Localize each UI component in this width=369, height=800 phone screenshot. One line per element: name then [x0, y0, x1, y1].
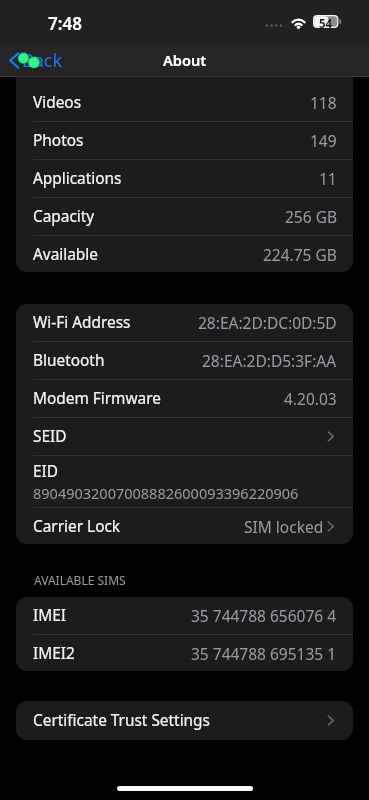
- staticText: 54: [319, 16, 333, 32]
- staticText: 256 GB: [285, 206, 337, 227]
- staticText: 35 744788 656076 4: [191, 605, 337, 626]
- staticText: Applications: [33, 168, 122, 189]
- button[interactable]: Available: [16, 236, 353, 272]
- button[interactable]: EID: [16, 456, 353, 508]
- staticText: Carrier Lock: [33, 516, 121, 537]
- staticText: Capacity: [33, 206, 95, 227]
- staticText: About: [163, 50, 207, 70]
- button[interactable]: Photos: [16, 122, 353, 160]
- button[interactable]: Applications: [16, 160, 353, 198]
- staticText: IMEI2: [33, 643, 75, 664]
- button[interactable]: Bluetooth: [16, 342, 353, 380]
- staticText: 224.75 GB: [263, 244, 337, 265]
- staticText: AVAILABLE SIMS: [34, 572, 126, 588]
- staticText: 7:48: [48, 12, 82, 35]
- staticText: Wi-Fi Address: [33, 312, 131, 333]
- staticText: Available: [33, 244, 98, 265]
- button[interactable]: Back: [9, 48, 63, 73]
- button[interactable]: Wi-Fi Address: [16, 304, 353, 342]
- staticText: Back: [22, 48, 63, 73]
- staticText: Videos: [33, 92, 82, 113]
- staticText: SEID: [33, 426, 67, 447]
- staticText: Photos: [33, 130, 84, 151]
- button[interactable]: IMEI2: [16, 635, 353, 671]
- button[interactable]: Capacity: [16, 198, 353, 236]
- staticText: 28:EA:2D:D5:3F:AA: [202, 350, 337, 371]
- staticText: 4.20.03: [284, 388, 337, 409]
- staticText: 11: [319, 168, 337, 189]
- staticText: 35 744788 695135 1: [191, 643, 337, 664]
- button[interactable]: IMEI: [16, 597, 353, 635]
- staticText: EID: [33, 461, 59, 482]
- staticText: Modem Firmware: [33, 388, 161, 409]
- staticText: 89049032007008882600093396220906: [33, 483, 299, 503]
- staticText: Bluetooth: [33, 350, 105, 371]
- button[interactable]: SEID: [16, 418, 353, 456]
- button[interactable]: Videos: [16, 77, 353, 122]
- button[interactable]: Carrier Lock: [16, 508, 353, 544]
- staticText: 28:EA:2D:DC:0D:5D: [198, 312, 337, 333]
- staticText: IMEI: [33, 605, 66, 626]
- button[interactable]: Modem Firmware: [16, 380, 353, 418]
- button[interactable]: Certificate Trust Settings: [16, 701, 353, 740]
- staticText: Certificate Trust Settings: [33, 710, 210, 731]
- staticText: SIM locked: [244, 516, 324, 537]
- staticText: 149: [310, 130, 337, 151]
- staticText: 118: [310, 92, 337, 113]
